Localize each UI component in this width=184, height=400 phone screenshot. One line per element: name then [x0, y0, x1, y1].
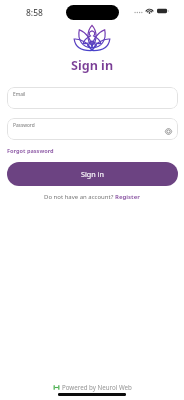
button[interactable]: Forgot password — [6, 146, 55, 156]
button[interactable]: Password — [7, 118, 178, 140]
button[interactable]: Register — [115, 193, 140, 201]
staticText: 8:58 — [26, 7, 43, 19]
button[interactable]: Email — [7, 87, 178, 109]
button[interactable]: Sign in — [7, 162, 178, 186]
staticText: Forgot password — [7, 147, 54, 155]
staticText: Password — [13, 122, 35, 129]
staticText: Sign in — [71, 57, 114, 74]
staticText: Powered by Neurol Web — [62, 383, 132, 391]
staticText: Email — [13, 91, 26, 98]
staticText: Register — [115, 193, 140, 201]
staticText: Do not have an account? — [44, 193, 115, 201]
button[interactable]: Show password — [165, 128, 172, 135]
staticText: Sign in — [81, 169, 104, 179]
